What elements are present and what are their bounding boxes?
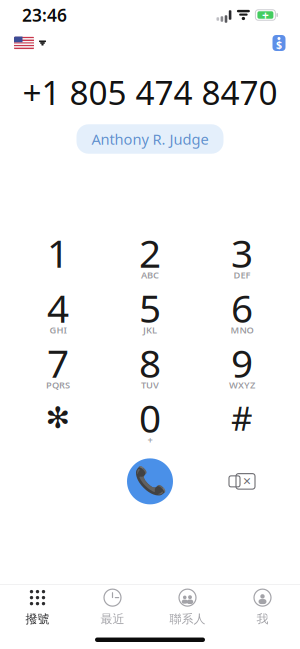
- staticText: TUV: [141, 379, 159, 391]
- button[interactable]: Call: [104, 454, 196, 508]
- staticText: ✕: [242, 475, 251, 487]
- button[interactable]: Select country code: [10, 31, 50, 54]
- staticText: Anthony R. Judge: [91, 129, 208, 149]
- button[interactable]: 8: [104, 340, 196, 395]
- button[interactable]: 4: [12, 285, 104, 340]
- staticText: 8: [139, 337, 161, 388]
- staticText: 我: [256, 612, 268, 626]
- staticText: 1: [47, 227, 69, 278]
- staticText: +: [147, 434, 152, 446]
- staticText: 3: [231, 227, 253, 278]
- staticText: 2: [139, 227, 161, 278]
- button[interactable]: 最近: [75, 582, 150, 632]
- staticText: 聯系人: [169, 612, 205, 626]
- staticText: 最近: [100, 612, 124, 626]
- staticText: 📞: [133, 466, 166, 497]
- staticText: +1 805 474 8470: [22, 70, 277, 114]
- staticText: 23:46: [22, 3, 67, 26]
- staticText: 4: [47, 282, 69, 333]
- button[interactable]: 我: [225, 582, 300, 632]
- staticText: 0: [139, 392, 161, 443]
- staticText: 7: [47, 337, 69, 388]
- staticText: 6: [231, 282, 253, 333]
- button[interactable]: 9: [196, 340, 288, 395]
- button[interactable]: 3: [196, 230, 288, 285]
- staticText: ✻: [45, 401, 70, 434]
- button[interactable]: 6: [196, 285, 288, 340]
- staticText: +: [262, 7, 269, 23]
- staticText: PQRS: [46, 379, 70, 391]
- button[interactable]: 0: [104, 395, 196, 450]
- button[interactable]: 5: [104, 285, 196, 340]
- button[interactable]: #: [196, 395, 288, 450]
- button[interactable]: 1: [12, 230, 104, 285]
- staticText: DEF: [233, 269, 250, 281]
- staticText: ABC: [141, 269, 159, 281]
- button[interactable]: Delete: [196, 454, 288, 508]
- staticText: 5: [139, 282, 161, 333]
- staticText: $: [276, 37, 282, 52]
- staticText: WXYZ: [229, 379, 255, 391]
- button[interactable]: 撥號: [0, 582, 75, 632]
- staticText: JKL: [143, 324, 157, 336]
- staticText: 9: [231, 337, 253, 388]
- button[interactable]: 2: [104, 230, 196, 285]
- button[interactable]: 聯系人: [150, 582, 225, 632]
- staticText: GHI: [49, 324, 66, 336]
- button[interactable]: 7: [12, 340, 104, 395]
- staticText: 撥號: [25, 612, 49, 626]
- staticText: MNO: [230, 324, 253, 336]
- button[interactable]: Anthony R. Judge: [76, 124, 223, 154]
- button[interactable]: ✻: [12, 395, 104, 450]
- staticText: #: [231, 396, 253, 440]
- button[interactable]: Call rate tag: [268, 30, 290, 55]
